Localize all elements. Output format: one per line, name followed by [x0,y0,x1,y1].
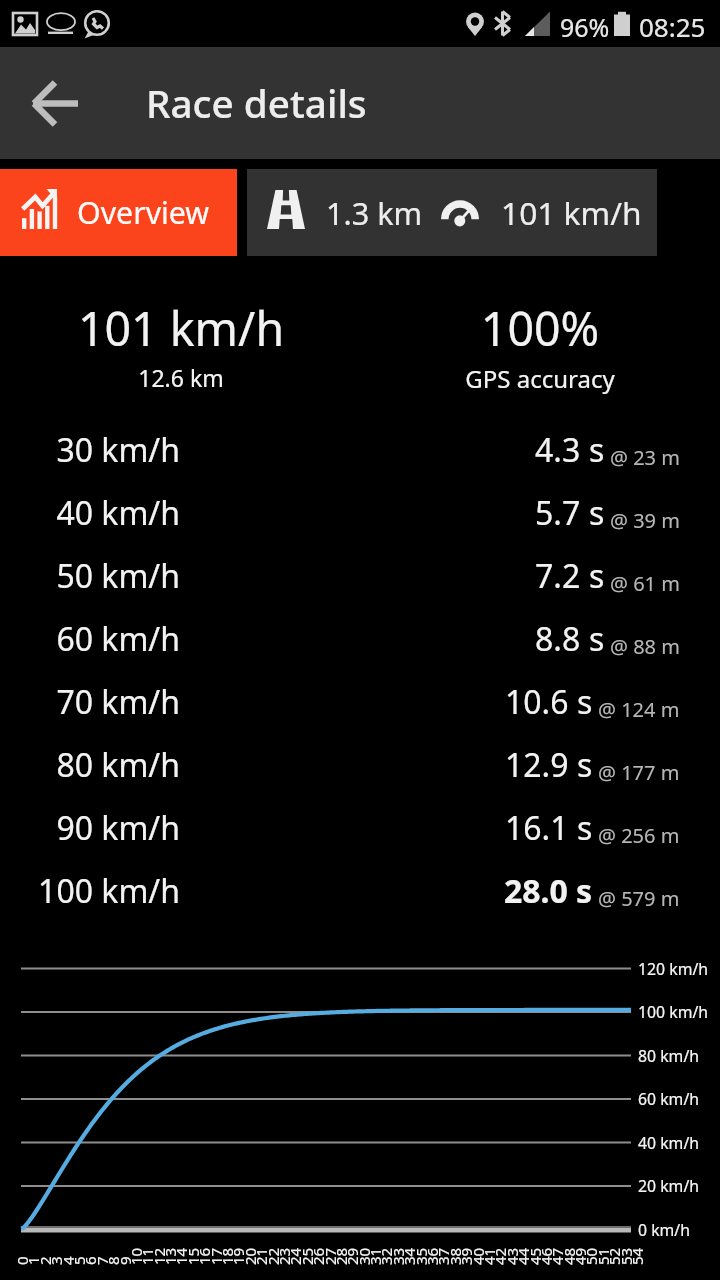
staticText: @ 88 m [610,633,680,660]
staticText: @ 23 m [610,444,680,471]
staticText: @ 61 m [610,570,680,597]
staticText: 28.0 [504,869,568,913]
staticText: 100% [359,296,720,359]
staticText: s [576,869,593,913]
staticText: 96% [560,10,610,44]
staticText: 80 km/h [0,743,180,787]
button[interactable]: 40 km/h [0,481,720,544]
button[interactable]: Overview [0,169,237,256]
staticText: @ 124 m [598,696,680,723]
button[interactable]: 80 km/h [0,733,720,796]
staticText: @ 177 m [598,759,680,786]
staticText: 4.3 [535,428,581,472]
staticText: @ 39 m [610,507,680,534]
staticText: s [577,680,593,724]
staticText: 60 km/h [0,617,180,661]
staticText: GPS accuracy [359,362,720,395]
button[interactable]: 70 km/h [0,670,720,733]
button[interactable]: 50 km/h [0,544,720,607]
staticText: s [589,491,605,535]
staticText: s [577,743,593,787]
staticText: @ 256 m [598,822,680,849]
staticText: 1.3 km [326,192,423,234]
staticText: 5.7 [535,491,581,535]
staticText: 101 km/h [501,191,642,234]
button[interactable]: 90 km/h [0,796,720,859]
staticText: 40 km/h [0,491,180,535]
staticText: s [589,554,605,598]
staticText: s [577,806,593,850]
staticText: 7.2 [535,554,581,598]
staticText: 70 km/h [0,680,180,724]
staticText: 50 km/h [0,554,180,598]
button[interactable]: 60 km/h [0,607,720,670]
staticText: 12.9 [505,743,569,787]
button[interactable]: Back [30,78,80,128]
staticText: 101 km/h [0,296,362,359]
staticText: 30 km/h [0,428,180,472]
staticText: s [589,617,605,661]
button[interactable]: 1.3 km [247,169,657,256]
button[interactable]: 100 km/h [0,859,720,922]
staticText: 12.6 km [0,362,362,393]
button[interactable]: 30 km/h [0,418,720,481]
staticText: s [589,428,605,472]
staticText: 16.1 [505,806,569,850]
staticText: @ 579 m [598,885,680,912]
staticText: 90 km/h [0,806,180,850]
staticText: 10.6 [505,680,569,724]
staticText: 08:25 [639,9,706,44]
staticText: Overview [77,192,210,233]
staticText: 8.8 [535,617,581,661]
staticText: 100 km/h [0,869,180,913]
staticText: Race details [146,77,367,130]
